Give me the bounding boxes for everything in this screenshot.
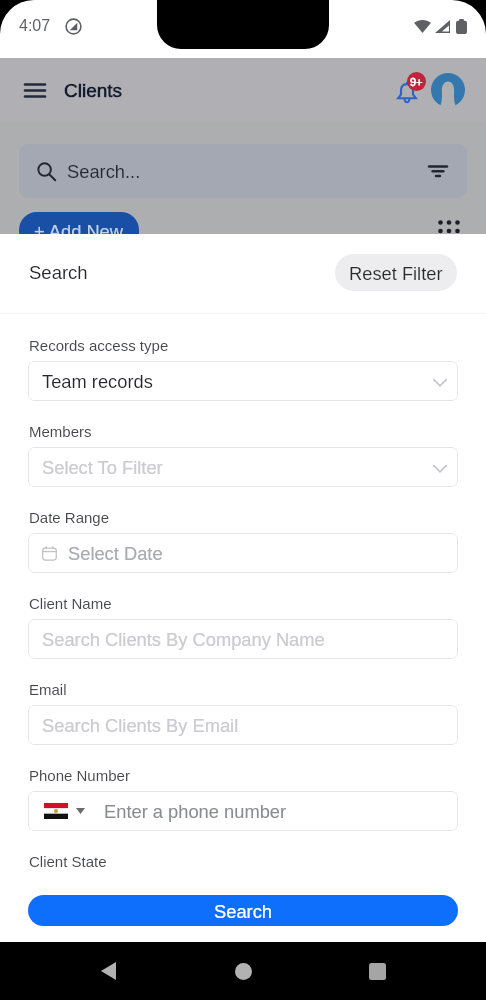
staticText: Clients bbox=[64, 80, 123, 101]
staticText: 4:07 bbox=[19, 17, 51, 35]
staticText: Members bbox=[29, 423, 92, 440]
button[interactable]: Profile bbox=[431, 73, 465, 107]
staticText: Phone Number bbox=[29, 767, 130, 784]
staticText: Email bbox=[29, 681, 67, 698]
staticText: Search... bbox=[67, 161, 141, 181]
button[interactable]: Search Clients By Email bbox=[28, 705, 458, 745]
staticText: Search Clients By Email bbox=[42, 715, 239, 735]
button[interactable]: Select To Filter bbox=[28, 447, 458, 487]
staticText: Search bbox=[214, 901, 272, 921]
staticText: Search bbox=[29, 262, 88, 283]
button[interactable]: Recents bbox=[353, 947, 401, 995]
staticText: Select Date bbox=[68, 543, 163, 563]
staticText: Select To Filter bbox=[42, 457, 163, 477]
button[interactable]: Home bbox=[219, 947, 267, 995]
staticText: Enter a phone number bbox=[104, 801, 287, 821]
staticText: Reset Filter bbox=[349, 263, 443, 283]
button[interactable]: Reset Filter bbox=[335, 254, 457, 291]
staticText: + Add New bbox=[34, 221, 124, 241]
staticText: Records access type bbox=[29, 337, 169, 354]
staticText: Client State bbox=[29, 853, 107, 870]
button[interactable]: Menu bbox=[16, 71, 54, 109]
staticText: Client Name bbox=[29, 595, 112, 612]
staticText: Team records bbox=[42, 371, 153, 391]
button[interactable]: Enter a phone number bbox=[28, 791, 458, 831]
staticText: 9+ bbox=[410, 76, 423, 88]
button[interactable]: Back bbox=[84, 947, 132, 995]
staticText: Search Clients By Company Name bbox=[42, 629, 325, 649]
button[interactable]: Search Clients By Company Name bbox=[28, 619, 458, 659]
button[interactable]: Notifications bbox=[388, 67, 434, 113]
button[interactable]: Search bbox=[28, 895, 458, 926]
staticText: Date Range bbox=[29, 509, 110, 526]
button[interactable]: Team records bbox=[28, 361, 458, 401]
button[interactable]: Select Date bbox=[28, 533, 458, 573]
